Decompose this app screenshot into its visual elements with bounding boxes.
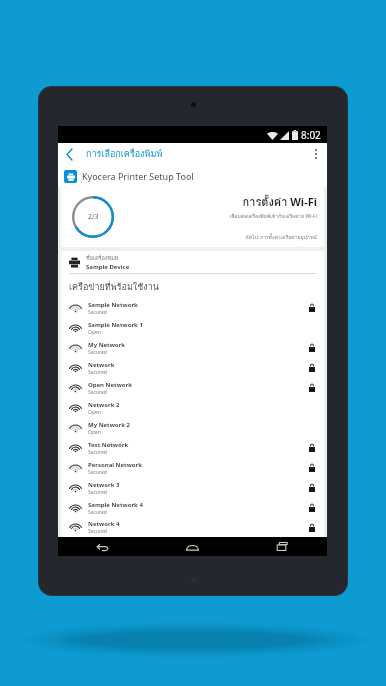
button[interactable]: Open Network: [61, 378, 324, 398]
staticText: Open Network: [88, 381, 132, 389]
button[interactable]: Back: [58, 537, 147, 556]
staticText: Secured: [88, 389, 107, 396]
staticText: Test Network: [88, 441, 129, 449]
staticText: Secured: [88, 449, 107, 456]
button[interactable]: 2/3: [61, 187, 324, 247]
staticText: Sample Network 1: [88, 321, 143, 329]
button[interactable]: Recents: [237, 537, 327, 556]
staticText: Open: [88, 429, 101, 436]
staticText: Personal Network: [88, 461, 142, 469]
button[interactable]: Network 4: [61, 518, 324, 537]
staticText: Open: [88, 409, 101, 416]
button[interactable]: ชื่อเครื่องพิมพ์: [69, 251, 324, 273]
staticText: Network: [88, 361, 115, 369]
staticText: Open: [88, 329, 101, 336]
staticText: การเลือกเครื่องพิมพ์: [86, 147, 163, 161]
staticText: Sample Device: [86, 263, 130, 271]
button[interactable]: Sample Network: [61, 298, 324, 318]
staticText: Secured: [88, 349, 107, 356]
button[interactable]: Personal Network: [61, 458, 324, 478]
button[interactable]: My Network: [61, 338, 324, 358]
button[interactable]: Sample Network 4: [61, 498, 324, 518]
button[interactable]: Network 3: [61, 478, 324, 498]
staticText: เครือข่ายที่พร้อมใช้งาน: [69, 280, 159, 294]
staticText: การตั้งค่า Wi-Fi: [242, 193, 317, 210]
staticText: 2/3: [88, 212, 99, 222]
button[interactable]: My Network 2: [61, 418, 324, 438]
button[interactable]: Back: [58, 143, 80, 165]
staticText: ชื่อเครื่องพิมพ์: [86, 254, 119, 263]
button[interactable]: Network 2: [61, 398, 324, 418]
staticText: Secured: [88, 309, 107, 316]
staticText: 8:02: [301, 128, 321, 142]
button[interactable]: More options: [305, 143, 327, 165]
staticText: My Network: [88, 341, 125, 349]
staticText: Network 3: [88, 481, 120, 489]
button[interactable]: Test Network: [61, 438, 324, 458]
button[interactable]: Home: [147, 537, 237, 556]
staticText: My Network 2: [88, 421, 130, 429]
staticText: Network 2: [88, 401, 120, 409]
staticText: Sample Network: [88, 301, 138, 309]
button[interactable]: Network: [61, 358, 324, 378]
staticText: Secured: [88, 489, 107, 496]
staticText: Kyocera Printer Setup Tool: [82, 170, 194, 182]
staticText: Secured: [88, 509, 107, 516]
staticText: ถัดไป: การตั้งค่าเครือข่ายอุปกรณ์: [245, 233, 317, 241]
button[interactable]: Sample Network 1: [61, 318, 324, 338]
staticText: Sample Network 4: [88, 501, 143, 509]
staticText: Network 4: [88, 520, 120, 528]
staticText: เชื่อมต่อเครื่องพิมพ์เข้ากับเครือข่าย Wi…: [229, 212, 317, 220]
staticText: Secured: [88, 469, 107, 476]
staticText: Secured: [88, 528, 107, 535]
staticText: Secured: [88, 369, 107, 376]
